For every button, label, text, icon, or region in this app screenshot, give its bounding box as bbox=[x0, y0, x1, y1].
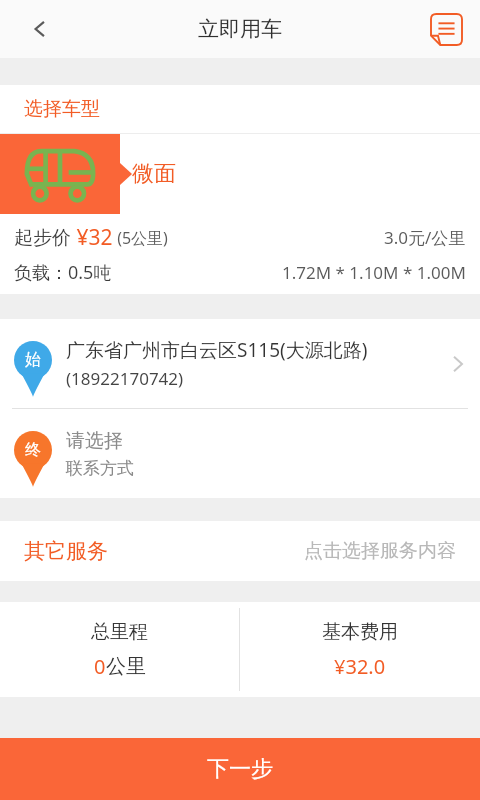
staticText: 点击选择服务内容 bbox=[304, 539, 456, 563]
button[interactable]: 其它服务 bbox=[0, 521, 480, 581]
button[interactable]: 始 bbox=[0, 319, 480, 408]
staticText: 微面 bbox=[132, 160, 176, 188]
button[interactable]: Back bbox=[14, 3, 66, 55]
button[interactable]: 终 bbox=[0, 409, 480, 498]
staticText: 选择车型 bbox=[24, 97, 100, 121]
button[interactable]: Order list bbox=[422, 5, 470, 53]
staticText: 其它服务 bbox=[24, 538, 108, 564]
button[interactable]: 微面 bbox=[0, 134, 480, 214]
staticText: 广东省广州市白云区S115(大源北路) bbox=[66, 337, 368, 363]
staticText: 起步价 bbox=[14, 226, 71, 250]
staticText: ¥32.0 bbox=[334, 653, 386, 680]
staticText: ¥32 bbox=[71, 223, 113, 252]
staticText: 3.0元/公里 bbox=[384, 226, 466, 249]
staticText: 联系方式 bbox=[66, 458, 134, 479]
staticText: 公里 bbox=[106, 654, 146, 679]
staticText: 下一步 bbox=[207, 755, 273, 783]
staticText: (18922170742) bbox=[66, 367, 184, 390]
staticText: 终 bbox=[25, 440, 41, 460]
button[interactable]: 下一步 bbox=[0, 738, 480, 800]
staticText: 立即用车 bbox=[198, 16, 282, 42]
staticText: 始 bbox=[25, 350, 41, 370]
staticText: 总里程 bbox=[91, 620, 148, 644]
staticText: 基本费用 bbox=[322, 620, 398, 644]
staticText: 1.72M * 1.10M * 1.00M bbox=[282, 261, 466, 284]
staticText: (5公里) bbox=[113, 227, 168, 249]
staticText: 0 bbox=[94, 653, 106, 680]
staticText: 请选择 bbox=[66, 429, 123, 453]
staticText: 负载：0.5吨 bbox=[14, 260, 112, 285]
